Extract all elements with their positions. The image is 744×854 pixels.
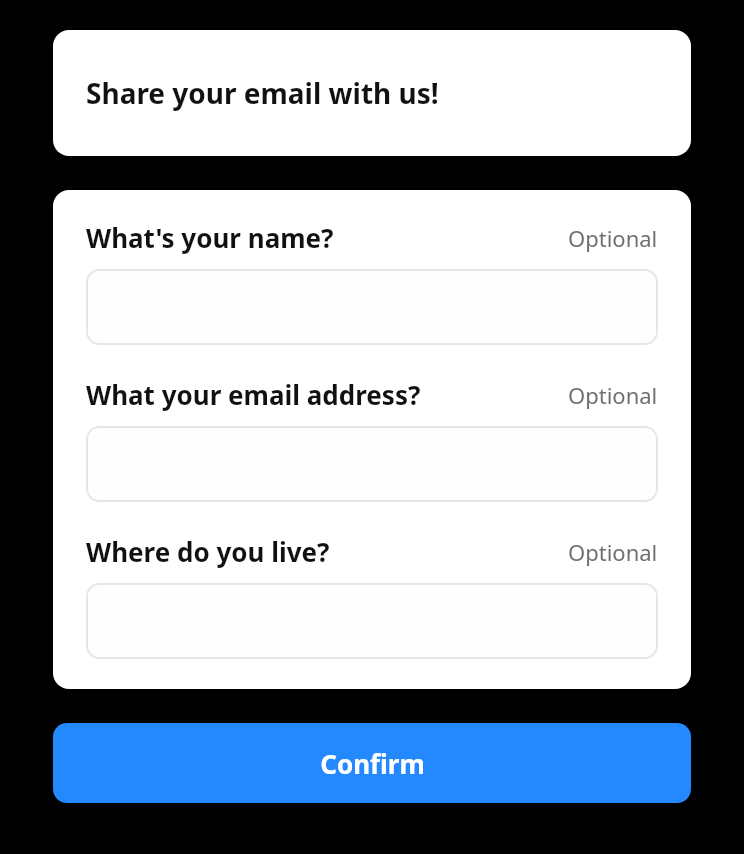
staticText: Share your email with us!	[86, 74, 439, 112]
button[interactable]: Confirm	[53, 723, 691, 803]
button[interactable]: Share your email with us!	[53, 30, 691, 156]
staticText: What's your name?	[86, 220, 334, 255]
button[interactable]	[86, 426, 658, 502]
button[interactable]	[86, 583, 658, 659]
button[interactable]	[86, 269, 658, 345]
staticText: Optional	[568, 380, 658, 410]
staticText: Confirm	[320, 746, 425, 781]
staticText: What your email address?	[86, 377, 421, 412]
staticText: Optional	[568, 537, 658, 567]
staticText: Optional	[568, 223, 658, 253]
staticText: Where do you live?	[86, 534, 330, 569]
